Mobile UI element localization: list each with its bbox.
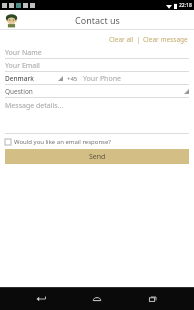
staticText: +45 <box>67 75 78 83</box>
button[interactable]: Clear message <box>142 34 189 45</box>
staticText: Clear message <box>143 35 188 44</box>
staticText: Contact us <box>75 14 120 26</box>
staticText: Your Email <box>5 61 40 71</box>
button[interactable]: Back <box>26 289 56 309</box>
button[interactable]: Your Phone <box>83 73 189 84</box>
button[interactable]: Home <box>82 289 112 309</box>
button[interactable]: Denmark <box>5 73 63 84</box>
staticText: Question <box>5 87 33 96</box>
button[interactable]: Clear all <box>108 34 135 45</box>
button[interactable]: Your Email <box>5 60 189 72</box>
button[interactable]: Message details... <box>5 99 189 134</box>
button[interactable]: Navigate up <box>2 11 20 29</box>
staticText: | <box>135 35 142 44</box>
staticText: Your Name <box>5 48 42 58</box>
staticText: Send <box>89 152 106 162</box>
button[interactable]: Send <box>5 149 189 164</box>
staticText: Clear all <box>109 35 134 44</box>
staticText: 22:18 <box>179 2 192 9</box>
staticText: Your Phone <box>83 74 121 84</box>
button[interactable]: Recent apps <box>138 289 168 309</box>
staticText: Denmark <box>5 74 34 83</box>
button[interactable]: Question <box>5 86 189 97</box>
button[interactable]: Your Name <box>5 47 189 59</box>
staticText: Would you like an email response? <box>14 138 111 146</box>
button[interactable]: Would you like an email response? <box>5 137 189 147</box>
staticText: Message details... <box>5 101 64 111</box>
